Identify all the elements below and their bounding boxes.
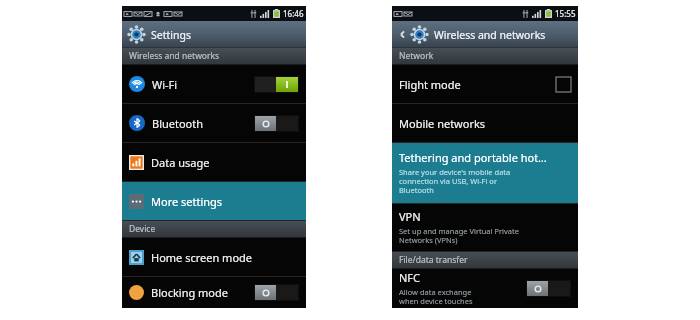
staticText: VPN bbox=[399, 209, 421, 224]
staticText: More settings bbox=[151, 194, 223, 209]
staticText: NFC bbox=[399, 270, 421, 285]
button[interactable]: Toggle off bbox=[527, 281, 570, 296]
button[interactable]: Wi-Fi bbox=[122, 65, 306, 103]
button[interactable]: Bluetooth bbox=[122, 104, 306, 142]
button[interactable]: More settings bbox=[122, 182, 306, 220]
button[interactable]: Mobile networks bbox=[392, 104, 578, 142]
staticText: Home screen mode bbox=[151, 250, 253, 265]
staticText: Tethering and portable hot… bbox=[399, 150, 547, 165]
button[interactable]: Tethering and portable hot… bbox=[392, 143, 578, 203]
staticText: Device bbox=[129, 223, 156, 235]
button[interactable]: Flight mode checkbox bbox=[556, 77, 571, 92]
button[interactable]: Home screen mode bbox=[122, 238, 306, 276]
button[interactable]: Back bbox=[396, 28, 409, 41]
staticText: Bluetooth bbox=[152, 116, 204, 131]
staticText: Share your device's mobile data connecti… bbox=[399, 167, 511, 196]
button[interactable]: Blocking mode bbox=[122, 277, 306, 308]
staticText: Wireless and networks bbox=[434, 28, 578, 42]
staticText: Set up and manage Virtual Private Networ… bbox=[399, 226, 519, 246]
staticText: Flight mode bbox=[399, 77, 461, 92]
staticText: Data usage bbox=[151, 155, 210, 170]
button[interactable]: Toggle on bbox=[255, 77, 298, 92]
button[interactable]: Toggle off bbox=[255, 116, 298, 131]
staticText: 16:46 bbox=[283, 8, 304, 19]
button[interactable]: Data usage bbox=[122, 143, 306, 181]
staticText: Wireless and networks bbox=[129, 50, 220, 62]
staticText: Allow data exchange when device touches bbox=[399, 287, 473, 307]
staticText: File/data transfer bbox=[399, 254, 468, 266]
button[interactable]: VPN bbox=[392, 204, 578, 251]
button[interactable]: Toggle off bbox=[255, 285, 298, 300]
staticText: Network bbox=[399, 50, 434, 62]
staticText: Settings bbox=[151, 28, 306, 42]
staticText: Wi-Fi bbox=[152, 77, 178, 92]
staticText: 15:55 bbox=[555, 8, 576, 19]
staticText: Blocking mode bbox=[151, 285, 228, 300]
button[interactable]: NFC bbox=[392, 269, 578, 308]
button[interactable]: Flight mode bbox=[392, 65, 578, 103]
staticText: Mobile networks bbox=[399, 116, 486, 131]
